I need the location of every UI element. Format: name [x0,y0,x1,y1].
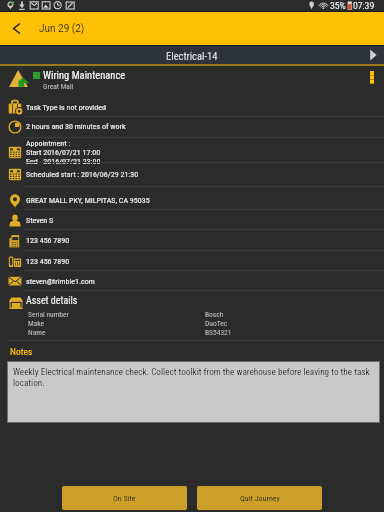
staticText: Weekly Electrical maintenance check. Col… [13,366,376,388]
button[interactable]: Wiring Maintenance [0,66,384,95]
staticText: Jun 29 (2) [39,23,85,35]
staticText: Electrical-14 [166,50,218,62]
staticText: Name [28,328,46,337]
staticText: Start 2016/07/21 17:00 [26,148,101,157]
staticText: Quit Journey [240,494,280,503]
button[interactable]: Back [0,12,32,45]
staticText: steven@trimble1.com [26,277,95,286]
staticText: End 2016/07/21 23:00 [26,157,101,164]
staticText: Serial number [28,310,69,319]
staticText: GREAT MALL PKY, MILPITAS, CA 95035 [26,196,150,205]
staticText: Scheduled start : 2016/06/29 21:30 [26,170,139,179]
button[interactable]: 123 456 7890 [0,230,384,251]
staticText: BS54321 [205,328,232,337]
button[interactable]: More options [360,66,384,95]
staticText: 35% [330,1,346,11]
button[interactable]: GREAT MALL PKY, MILPITAS, CA 95035 [0,187,384,210]
button[interactable]: Quit Journey [197,486,322,510]
staticText: Bosch [205,310,224,319]
button[interactable]: On Site [62,486,187,510]
button[interactable]: Next [362,46,384,64]
staticText: Appointment : [26,139,71,148]
staticText: 123 456 7890 [26,236,70,245]
staticText: Wiring Maintenance [43,69,126,81]
button[interactable]: Steven S [0,210,384,230]
button[interactable]: Scheduled start : 2016/06/29 21:30 [0,163,384,187]
button[interactable]: Task Type is not provided [0,95,384,117]
button[interactable]: Asset details [0,291,384,341]
staticText: 07:39 [353,1,375,11]
button[interactable]: steven@trimble1.com [0,271,384,291]
button[interactable]: Appointment : [0,138,384,163]
button[interactable]: Electrical-14 [0,46,384,64]
staticText: Task Type is not provided [26,103,106,112]
staticText: 123 456 7890 [26,257,70,266]
button[interactable]: 123 456 7890 [0,251,384,271]
staticText: 2 hours and 30 minutes of work [26,122,126,131]
staticText: Great Mall [43,82,74,91]
staticText: DuoTec [205,319,228,328]
staticText: Asset details [26,295,78,307]
staticText: Steven S [26,216,54,225]
button[interactable]: 2 hours and 30 minutes of work [0,117,384,138]
staticText: Notes [10,346,33,357]
staticText: On Site [113,494,136,503]
staticText: Make [28,319,45,328]
